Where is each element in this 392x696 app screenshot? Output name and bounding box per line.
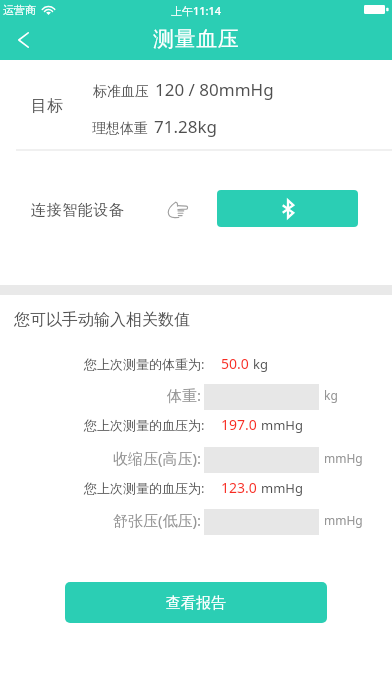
button[interactable]: 连接智能设备 <box>24 190 194 227</box>
staticText: 查看报告 <box>166 594 226 613</box>
button[interactable]: Connect bluetooth device <box>217 190 358 227</box>
staticText: 50.0 <box>221 354 249 373</box>
staticText: mmHg <box>324 512 363 528</box>
staticText: kg <box>253 355 268 373</box>
staticText: 上午11:14 <box>171 3 222 18</box>
staticText: mmHg <box>324 450 363 466</box>
staticText: 测量血压 <box>153 26 239 52</box>
staticText: 标准血压 <box>93 83 149 101</box>
staticText: mmHg <box>261 479 303 497</box>
button[interactable]: Back <box>0 20 46 60</box>
staticText: 舒张压(低压): <box>0 510 201 530</box>
staticText: 123.0 <box>221 478 257 497</box>
staticText: 120 / 80mmHg <box>155 78 274 101</box>
staticText: 197.0 <box>221 415 257 434</box>
staticText: 您上次测量的体重为: <box>84 355 205 373</box>
staticText: 运营商 <box>3 3 36 17</box>
staticText: 目标 <box>31 96 63 116</box>
staticText: 您上次测量的血压为: <box>84 416 205 434</box>
staticText: mmHg <box>261 416 303 434</box>
staticText: 您上次测量的血压为: <box>84 479 205 497</box>
button[interactable]: 查看报告 <box>65 582 327 623</box>
staticText: 收缩压(高压): <box>0 448 201 468</box>
staticText: kg <box>324 387 338 403</box>
staticText: 71.28kg <box>154 115 217 138</box>
staticText: 理想体重 <box>92 120 148 138</box>
staticText: 体重: <box>0 385 201 405</box>
staticText: 您可以手动输入相关数值 <box>14 310 190 330</box>
staticText: 连接智能设备 <box>31 201 125 220</box>
